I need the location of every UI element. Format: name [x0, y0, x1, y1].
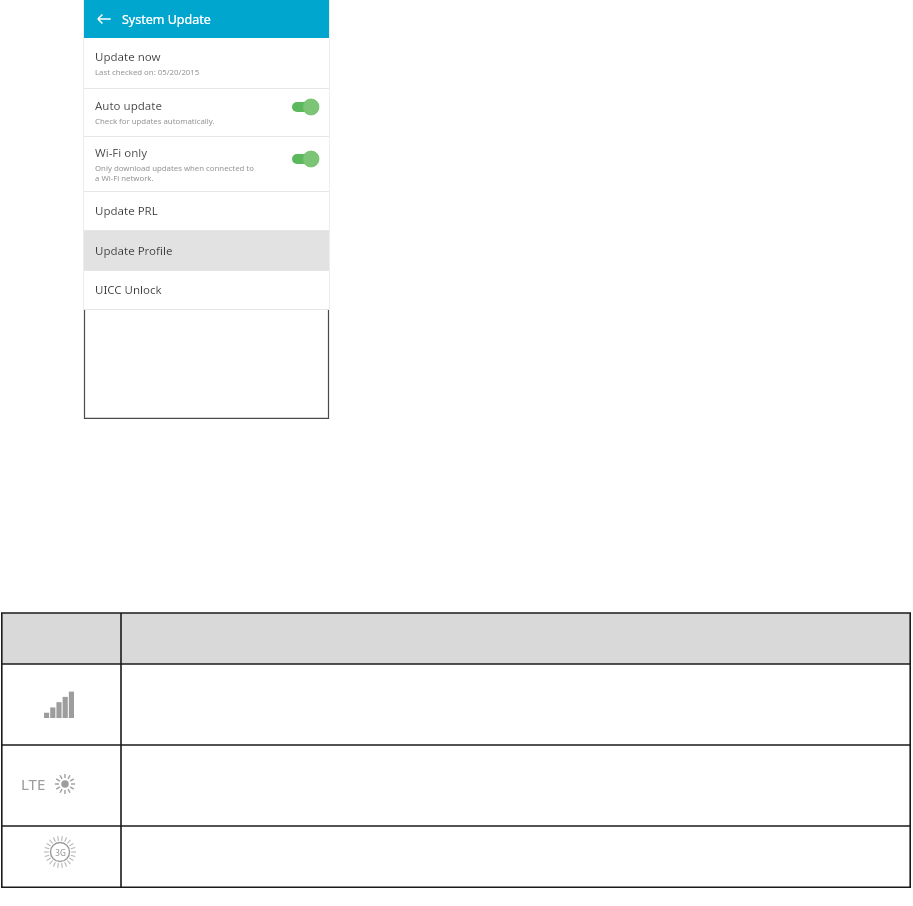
staticText: Last checked on: 05/20/2015	[95, 67, 200, 78]
button[interactable]: Wi-Fi only	[84, 137, 329, 191]
staticText: Check for updates automatically.	[95, 116, 215, 127]
button[interactable]: Toggle Auto update	[292, 99, 319, 115]
button[interactable]: Auto update	[84, 89, 329, 136]
staticText: Update now	[95, 49, 161, 65]
staticText: Only download updates when connected to …	[95, 163, 254, 183]
button[interactable]: UICC Unlock	[84, 271, 329, 309]
staticText: LTE	[21, 774, 46, 794]
button[interactable]: Update PRL	[84, 192, 329, 230]
staticText: UICC Unlock	[95, 282, 162, 298]
staticText: Update Profile	[95, 243, 173, 259]
button[interactable]: Back	[92, 7, 116, 31]
button[interactable]: Toggle Wi-Fi only	[292, 151, 319, 167]
button[interactable]: Update Profile	[84, 231, 329, 270]
button[interactable]: Update now	[84, 38, 329, 88]
staticText: Wi-Fi only	[95, 145, 148, 161]
staticText: 3G	[55, 847, 66, 858]
staticText: Auto update	[95, 98, 162, 114]
staticText: System Update	[122, 11, 211, 28]
staticText: Update PRL	[95, 203, 158, 219]
